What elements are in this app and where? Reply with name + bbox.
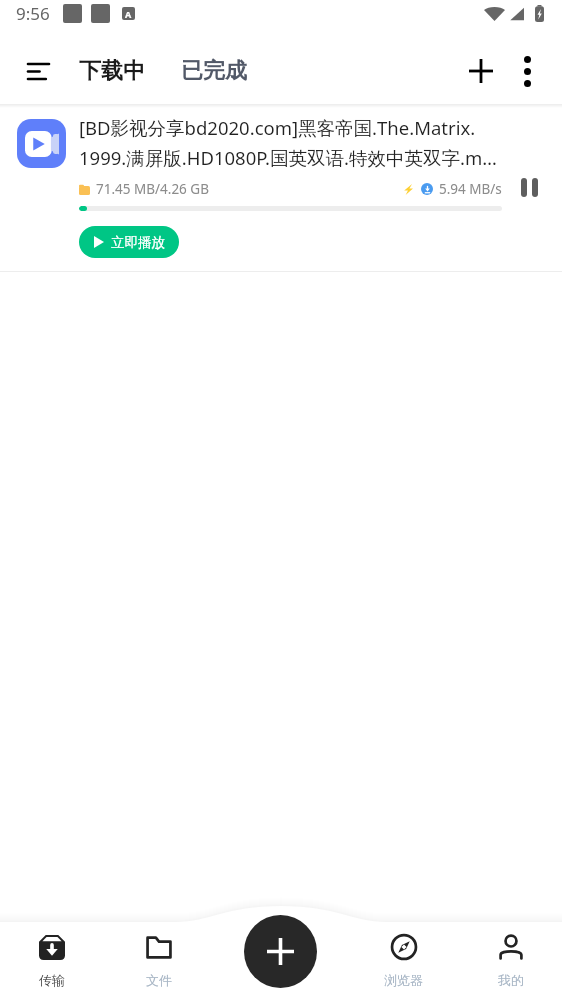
staticText: 1999.满屏版.HD1080P.国英双语.特效中英双字.m… [79,145,497,170]
button[interactable]: Pause [512,170,546,204]
button[interactable]: Add [458,48,504,94]
button[interactable]: 浏览器 [362,930,445,992]
staticText: 传输 [39,972,65,988]
button[interactable]: 立即播放 [79,226,179,258]
staticText: [BD影视分享bd2020.com]黑客帝国.The.Matrix. [79,115,476,140]
staticText: A [125,8,132,20]
button[interactable]: Add download [244,915,317,988]
button[interactable]: 文件 [117,930,200,992]
button[interactable]: [BD影视分享bd2020.com]黑客帝国.The.Matrix. [0,108,562,272]
staticText: 立即播放 [111,234,165,251]
button[interactable]: 传输 [10,930,93,992]
staticText: 下载中 [79,57,145,85]
button[interactable]: 我的 [469,930,552,992]
staticText: 5.94 MB/s [439,180,502,198]
staticText: 我的 [498,972,524,988]
button[interactable]: Menu [16,49,60,93]
staticText: 文件 [146,972,172,988]
staticText: 已完成 [181,57,247,85]
staticText: 9:56 [16,2,50,25]
button[interactable]: 下载中 [79,57,145,85]
staticText: 浏览器 [384,972,423,988]
button[interactable]: 已完成 [181,57,247,85]
button[interactable]: More options [504,48,550,94]
staticText: 71.45 MB/4.26 GB [96,180,209,198]
